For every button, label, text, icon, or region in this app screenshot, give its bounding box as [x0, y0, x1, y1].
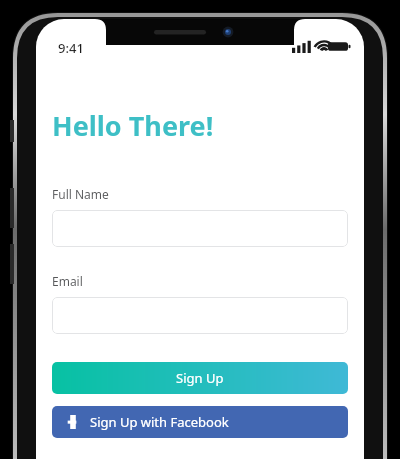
- staticText: Hello There!: [52, 107, 214, 144]
- staticText: Full Name: [52, 186, 109, 202]
- staticText: Sign Up: [176, 369, 224, 387]
- button[interactable]: Sign Up: [52, 362, 348, 394]
- button[interactable]: [52, 210, 348, 247]
- other: Facebook: [66, 415, 80, 429]
- button[interactable]: [52, 297, 348, 334]
- staticText: Email: [52, 273, 83, 289]
- staticText: Sign Up with Facebook: [90, 413, 229, 431]
- staticText: 9:41: [58, 39, 84, 57]
- button[interactable]: Facebook: [52, 406, 348, 438]
